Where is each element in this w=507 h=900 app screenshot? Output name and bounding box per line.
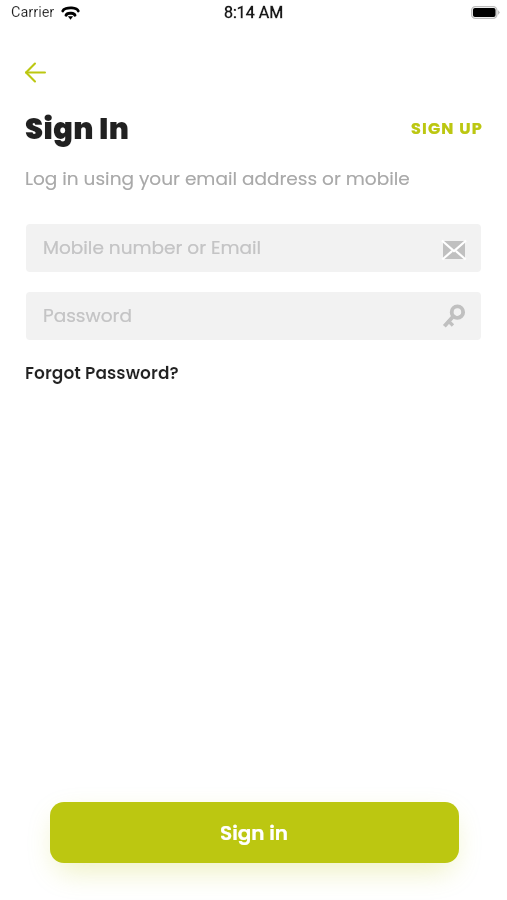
button[interactable]: Back	[13, 50, 58, 95]
button[interactable]: Mobile number or Email	[26, 224, 481, 272]
staticText: Forgot Password?	[25, 361, 179, 385]
staticText: Sign In	[25, 109, 130, 150]
staticText: Log in using your email address or mobil…	[25, 166, 410, 192]
button[interactable]: Password	[26, 292, 481, 340]
button[interactable]: SIGN UP	[404, 114, 490, 142]
staticText: 8:14 AM	[224, 3, 284, 22]
staticText: Mobile number or Email	[43, 235, 262, 261]
staticText: Sign in	[220, 819, 289, 847]
button[interactable]: Forgot Password?	[25, 359, 179, 387]
staticText: Carrier	[11, 4, 55, 21]
button[interactable]: Sign in	[50, 802, 459, 863]
staticText: Password	[43, 303, 132, 329]
staticText: SIGN UP	[411, 117, 483, 139]
